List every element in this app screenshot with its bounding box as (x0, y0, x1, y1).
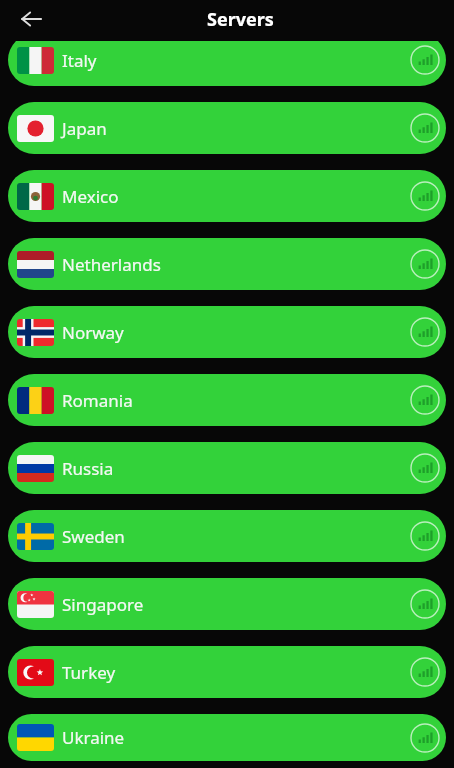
button[interactable]: Netherlands (8, 238, 446, 290)
staticText: Servers (207, 7, 274, 32)
button[interactable]: Ukraine (8, 714, 446, 761)
staticText: Romania (62, 389, 133, 412)
button[interactable]: Russia (8, 442, 446, 494)
button[interactable]: Italy (8, 41, 446, 86)
other: Signal strength (410, 589, 440, 619)
staticText: Russia (62, 457, 114, 480)
other: Signal strength (410, 723, 440, 753)
button[interactable]: Turkey (8, 646, 446, 698)
button[interactable]: Japan (8, 102, 446, 154)
staticText: Sweden (62, 525, 125, 548)
staticText: Italy (62, 49, 97, 72)
staticText: Netherlands (62, 253, 161, 276)
staticText: Ukraine (62, 726, 125, 749)
other: Signal strength (410, 181, 440, 211)
button[interactable]: Singapore (8, 578, 446, 630)
staticText: Singapore (62, 593, 144, 616)
other: Signal strength (410, 45, 440, 75)
other: Signal strength (410, 657, 440, 687)
other: Signal strength (410, 385, 440, 415)
button[interactable]: Norway (8, 306, 446, 358)
button[interactable]: Romania (8, 374, 446, 426)
other: Signal strength (410, 113, 440, 143)
other: Signal strength (410, 453, 440, 483)
staticText: Japan (62, 117, 107, 140)
staticText: Mexico (62, 185, 119, 208)
button[interactable]: Back (14, 2, 48, 36)
staticText: Turkey (62, 661, 116, 684)
button[interactable]: Sweden (8, 510, 446, 562)
other: Signal strength (410, 521, 440, 551)
other: Signal strength (410, 317, 440, 347)
button[interactable]: Mexico (8, 170, 446, 222)
staticText: Norway (62, 321, 124, 344)
other: Signal strength (410, 249, 440, 279)
